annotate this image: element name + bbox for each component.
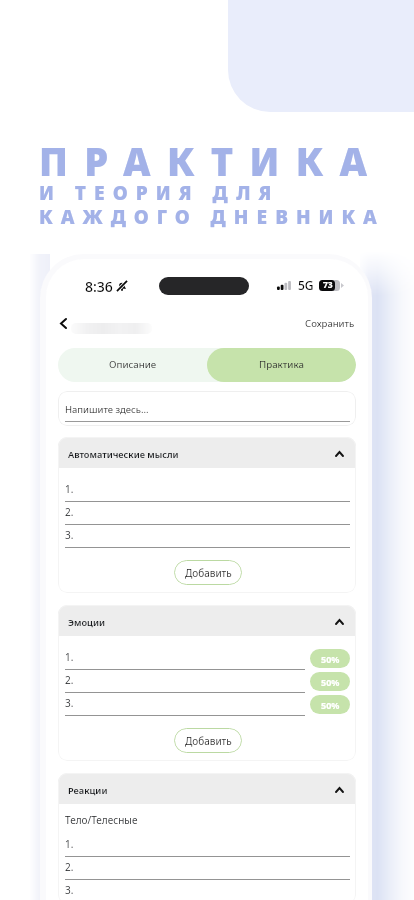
staticText: Реакции [68,784,335,797]
staticText: Эмоции [68,616,335,629]
staticText: 73 [323,279,333,291]
staticText: 2. [65,673,74,687]
button[interactable]: 50% [310,695,350,714]
staticText: ПРАКТИКА [39,135,384,187]
staticText: 3. [65,883,74,895]
staticText: 50% [321,699,340,711]
staticText: Практика [259,358,304,371]
button[interactable]: Реакции [68,773,344,804]
button[interactable]: Добавить [174,728,242,753]
button[interactable]: Сохранить [302,314,358,333]
button[interactable]: Описание [58,348,207,382]
staticText: Добавить [185,734,232,748]
staticText: 3. [65,696,74,710]
button[interactable]: 50% [310,672,350,691]
button[interactable]: Напишите здесь... [58,391,356,426]
staticText: Описание [109,358,157,371]
staticText: 1. [65,650,74,664]
staticText: 2. [65,860,74,874]
staticText: 50% [321,676,340,688]
button[interactable]: Назад [50,310,76,336]
button[interactable]: Добавить [174,560,242,585]
staticText: КАЖДОГО ДНЕВНИКА [39,204,385,230]
button[interactable]: 50% [310,649,350,668]
staticText: 1. [65,482,74,496]
staticText: 2. [65,505,74,519]
staticText: 8:36 [85,277,113,296]
staticText: 50% [321,653,340,665]
staticText: 5G [298,277,314,293]
staticText: Напишите здесь... [65,403,149,416]
staticText: Тело/Телесные [65,813,138,827]
staticText: И ТЕОРИЯ ДЛЯ [39,180,280,206]
staticText: Сохранить [305,317,355,330]
staticText: 3. [65,528,74,542]
button[interactable]: Эмоции [68,605,344,636]
button[interactable]: Практика [207,348,356,382]
staticText: 1. [65,837,74,851]
staticText: Автоматические мысли [68,448,335,461]
button[interactable]: Автоматические мысли [68,437,344,468]
staticText: Добавить [185,566,232,580]
